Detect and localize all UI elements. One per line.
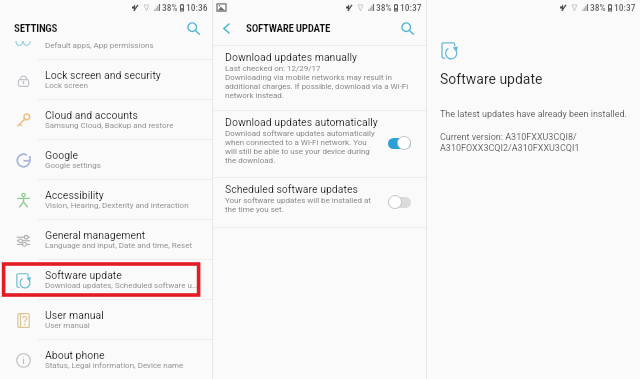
button[interactable]: Search [182,17,204,39]
staticText: 10:36 [186,2,208,13]
staticText: Current version: A310FXXU3CQI8/ A310FOXX… [440,132,580,154]
staticText: User manual [45,309,104,321]
staticText: 10:37 [614,2,636,13]
staticText: 38% [376,2,392,13]
button[interactable]: Download updates automatically [213,111,426,177]
button[interactable]: Download updates manually [213,46,426,110]
staticText: Scheduled software updates [225,183,358,195]
staticText: Lock screen and security [45,69,161,81]
staticText: Your software updates will be installed … [225,196,375,214]
staticText: 38% [162,2,178,13]
button[interactable]: Search [396,17,418,39]
staticText: About phone [45,349,105,361]
button[interactable]: Disabled [388,195,411,209]
staticText: SOFTWARE UPDATE [246,22,330,35]
staticText: Cloud and accounts [45,109,138,121]
staticText: Google [45,149,79,161]
staticText: 38% [590,2,606,13]
staticText: General management [45,229,146,241]
staticText: SETTINGS [14,22,58,35]
staticText: Language and input, Date and time, Reset [45,241,193,250]
staticText: Software update [440,71,543,87]
staticText: Download updates manually [225,51,357,63]
button[interactable]: Scheduled software updates [213,178,426,227]
button[interactable]: User manual [0,300,212,339]
button[interactable]: Lock screen and security [0,60,212,99]
staticText: Google settings [45,161,101,170]
staticText: Download software updates automatically … [225,129,375,165]
button[interactable]: Cloud and accounts [0,100,212,139]
staticText: Status, Legal information, Device name [45,361,184,370]
staticText: Downloading via mobile networks may resu… [225,73,412,100]
button[interactable]: General management [0,220,212,259]
staticText: Vision, Hearing, Dexterity and interacti… [45,201,189,210]
staticText: Download updates, Scheduled software upd… [45,281,199,290]
staticText: The latest updates have already been ins… [440,109,627,120]
button[interactable]: About phone [0,340,212,379]
button[interactable]: Google [0,140,212,179]
staticText: 10:37 [400,2,422,13]
button[interactable]: Enabled [388,136,411,150]
staticText: Samsung Cloud, Backup and restore [45,121,174,130]
staticText: Lock screen [45,81,88,90]
staticText: Software update [45,269,122,281]
staticText: Default apps, App permissions [45,41,154,50]
staticText: User manual [45,321,90,330]
staticText: Accessibility [45,189,104,201]
button[interactable]: Back [214,16,238,40]
button[interactable]: Accessibility [0,180,212,219]
staticText: Last checked on: 12/29/17 [225,64,321,73]
button[interactable]: Software update [0,260,212,299]
staticText: Download updates automatically [225,116,378,128]
